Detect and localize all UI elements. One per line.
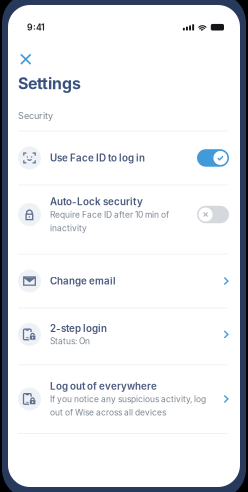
staticText: Settings bbox=[18, 74, 81, 93]
staticText: Change email bbox=[50, 275, 116, 287]
button[interactable]: 2-step login bbox=[8, 308, 240, 364]
button[interactable]: Auto-Lock security bbox=[8, 185, 240, 254]
staticText: 2-step login bbox=[50, 322, 107, 334]
staticText: Log out of everywhere bbox=[50, 380, 157, 392]
button[interactable]: Log out of everywhere bbox=[8, 365, 240, 433]
button[interactable]: Change email bbox=[8, 255, 240, 308]
staticText: Require Face ID after 10 min of inactivi… bbox=[50, 210, 169, 233]
button[interactable]: Use Face ID to log in bbox=[8, 131, 240, 184]
staticText: 9:41 bbox=[27, 22, 45, 32]
button[interactable]: Close bbox=[15, 48, 36, 70]
staticText: Security bbox=[18, 110, 53, 121]
staticText: If you notice any suspicious activity, l… bbox=[50, 394, 206, 418]
staticText: Status: On bbox=[50, 336, 90, 346]
staticText: Use Face ID to log in bbox=[50, 152, 145, 164]
staticText: Auto-Lock security bbox=[50, 196, 143, 208]
